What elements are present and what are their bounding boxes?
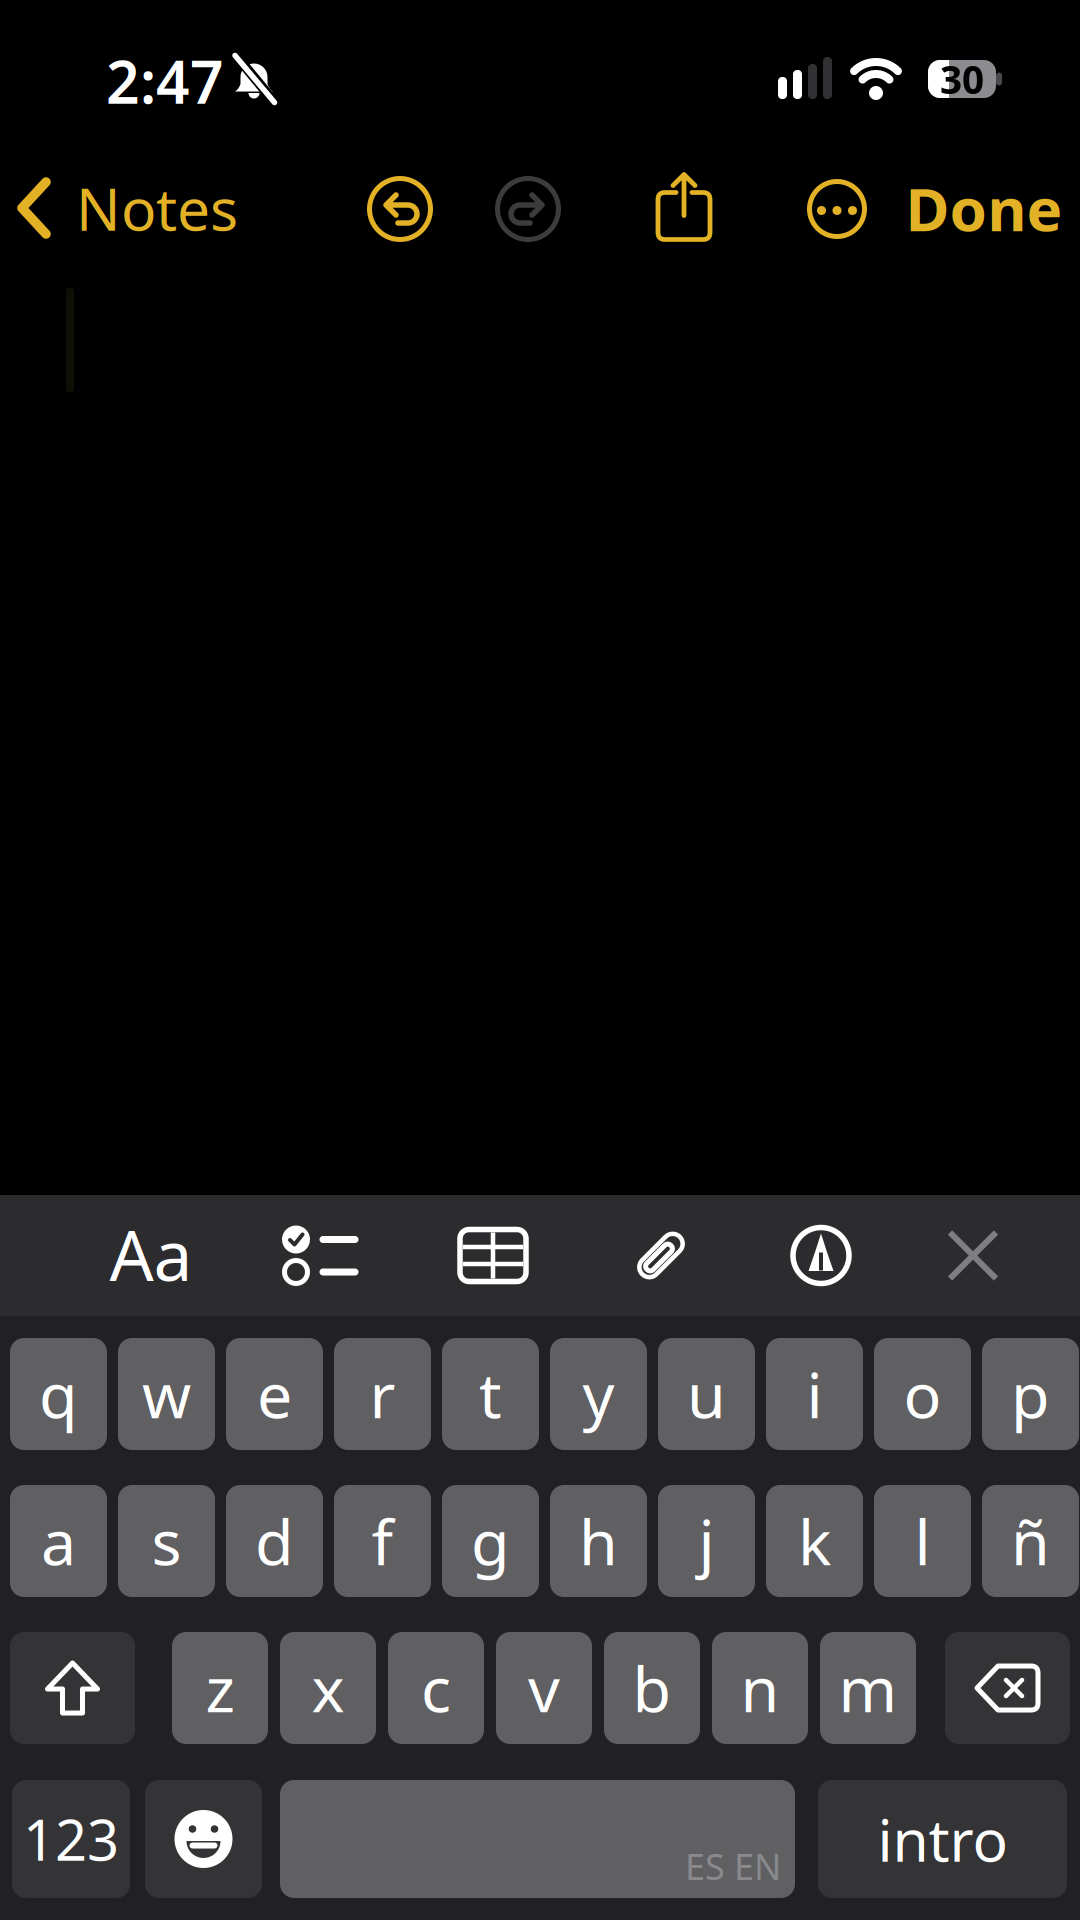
button[interactable]: Emoji [145,1780,262,1898]
button[interactable]: p [982,1338,1079,1450]
staticText: i [806,1352,822,1436]
staticText: n [740,1646,779,1730]
button[interactable]: b [604,1632,700,1744]
button[interactable]: l [874,1485,971,1597]
staticText: z [205,1646,234,1730]
staticText: Aa [109,1208,192,1300]
button[interactable]: x [280,1632,376,1744]
staticText: p [1011,1352,1050,1436]
button[interactable]: v [496,1632,592,1744]
staticText: intro [877,1800,1007,1878]
button[interactable]: Shift [10,1632,135,1744]
staticText: r [369,1352,395,1436]
staticText: k [798,1499,831,1583]
staticText: g [471,1499,510,1583]
button[interactable]: Table [460,1229,526,1281]
staticText: v [528,1646,560,1730]
staticText: h [579,1499,618,1583]
button[interactable]: m [820,1632,916,1744]
button[interactable]: g [442,1485,539,1597]
staticText: s [151,1499,181,1583]
button[interactable]: h [550,1485,647,1597]
staticText: e [257,1352,292,1436]
staticText: Done [905,168,1062,248]
button[interactable]: 123 [12,1780,130,1898]
button[interactable]: w [118,1338,215,1450]
button[interactable]: Back [18,172,280,244]
button[interactable]: Markup [790,1224,852,1286]
button[interactable]: j [658,1485,755,1597]
staticText: j [698,1499,714,1583]
button[interactable]: u [658,1338,755,1450]
staticText: f [371,1499,393,1583]
button[interactable]: r [334,1338,431,1450]
button[interactable]: Format [106,1219,196,1289]
button[interactable]: intro [818,1780,1067,1898]
staticText: w [142,1352,191,1436]
button[interactable]: f [334,1485,431,1597]
staticText: Notes [76,169,238,247]
staticText: d [255,1499,294,1583]
button[interactable]: a [10,1485,107,1597]
staticText: ES EN [685,1842,781,1890]
button[interactable]: Dismiss keyboard [948,1230,998,1280]
staticText: b [632,1646,671,1730]
button[interactable]: s [118,1485,215,1597]
button[interactable]: Checklist [282,1223,358,1287]
staticText: a [41,1499,76,1583]
button[interactable]: t [442,1338,539,1450]
button[interactable]: Delete [945,1632,1070,1744]
button[interactable]: c [388,1632,484,1744]
button[interactable]: z [172,1632,268,1744]
button[interactable]: Attach [633,1227,689,1284]
button[interactable]: o [874,1338,971,1450]
staticText: x [311,1646,344,1730]
button[interactable]: k [766,1485,863,1597]
staticText: y [582,1352,614,1436]
staticText: q [39,1352,78,1436]
staticText: 30 [940,53,984,105]
staticText: t [479,1352,502,1436]
button[interactable]: Undo [367,176,433,242]
staticText: c [421,1646,451,1730]
button[interactable]: e [226,1338,323,1450]
staticText: u [687,1352,726,1436]
button[interactable]: Done [905,168,1062,248]
button[interactable]: n [712,1632,808,1744]
button[interactable]: y [550,1338,647,1450]
staticText: 123 [23,1802,119,1876]
button[interactable]: Redo [495,176,561,242]
staticText: o [903,1352,941,1436]
button[interactable]: d [226,1485,323,1597]
staticText: 2:47 [106,42,224,120]
button[interactable]: More [807,179,867,239]
button[interactable]: ñ [982,1485,1079,1597]
button[interactable]: Space [280,1780,795,1898]
button[interactable]: q [10,1338,107,1450]
button[interactable]: i [766,1338,863,1450]
staticText: l [914,1499,930,1583]
staticText: ñ [1011,1499,1050,1583]
button[interactable]: Share [655,171,713,242]
staticText: m [838,1646,897,1730]
